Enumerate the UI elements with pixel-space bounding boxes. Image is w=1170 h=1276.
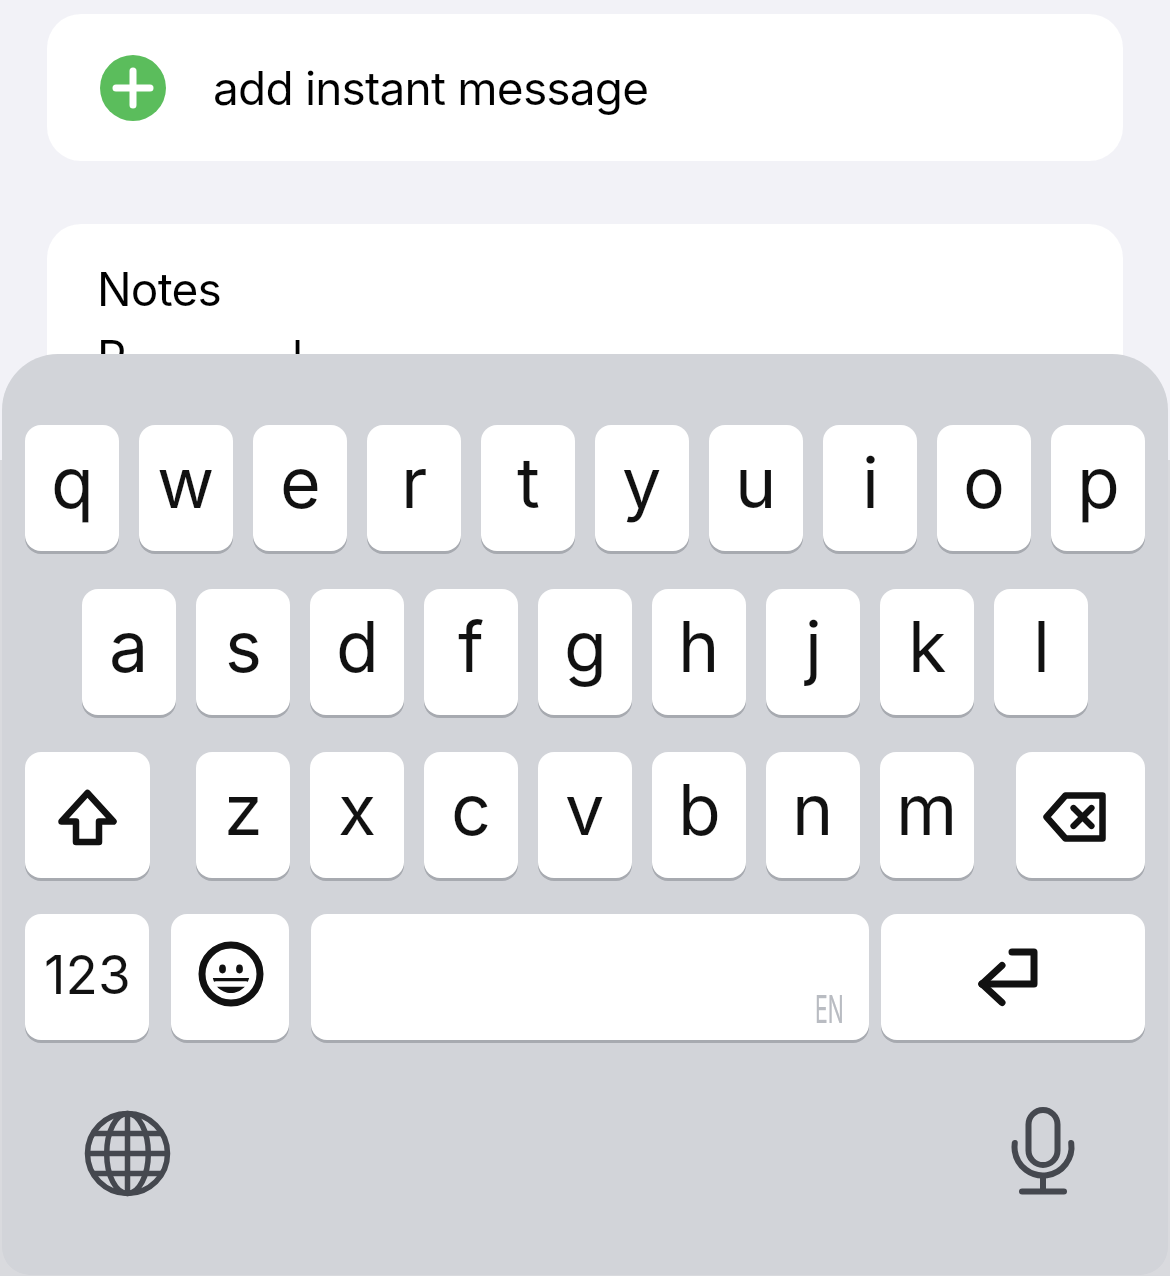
staticText: y xyxy=(622,440,662,525)
staticText: add instant message xyxy=(213,60,649,116)
staticText: n xyxy=(792,767,834,852)
button[interactable] xyxy=(1008,1105,1078,1197)
staticText: e xyxy=(280,440,321,525)
button[interactable]: c xyxy=(424,752,518,878)
staticText: k xyxy=(908,604,947,689)
staticText: v xyxy=(565,767,605,852)
staticText: 123 xyxy=(44,943,131,1007)
staticText: Notes xyxy=(97,261,221,317)
staticText: t xyxy=(517,440,540,525)
button[interactable]: t xyxy=(481,425,575,551)
button[interactable]: n xyxy=(766,752,860,878)
staticText: b xyxy=(678,767,721,852)
button[interactable]: b xyxy=(652,752,746,878)
button[interactable]: q xyxy=(25,425,119,551)
button[interactable]: v xyxy=(538,752,632,878)
staticText: s xyxy=(225,604,262,689)
button[interactable]: m xyxy=(880,752,974,878)
button[interactable]: a xyxy=(82,589,176,715)
button[interactable]: add instant message xyxy=(47,14,1123,161)
button[interactable]: x xyxy=(310,752,404,878)
staticText: o xyxy=(963,440,1005,525)
button[interactable]: k xyxy=(880,589,974,715)
button[interactable] xyxy=(171,914,289,1040)
staticText: u xyxy=(735,440,777,525)
button[interactable]: i xyxy=(823,425,917,551)
staticText: j xyxy=(805,604,822,689)
button[interactable]: z xyxy=(196,752,290,878)
button[interactable]: o xyxy=(937,425,1031,551)
staticText: P xyxy=(97,329,126,385)
button[interactable]: f xyxy=(424,589,518,715)
staticText: h xyxy=(678,604,720,689)
button[interactable]: y xyxy=(595,425,689,551)
staticText: f xyxy=(458,604,484,689)
button[interactable]: EN xyxy=(311,914,869,1040)
button[interactable]: s xyxy=(196,589,290,715)
button[interactable] xyxy=(881,914,1145,1040)
staticText: l xyxy=(1033,604,1050,689)
button[interactable]: p xyxy=(1051,425,1145,551)
button[interactable]: g xyxy=(538,589,632,715)
button[interactable]: j xyxy=(766,589,860,715)
button[interactable]: d xyxy=(310,589,404,715)
staticText: w xyxy=(157,440,215,525)
staticText: x xyxy=(338,767,377,852)
staticText: l xyxy=(292,329,303,385)
staticText: c xyxy=(451,767,491,852)
staticText: q xyxy=(51,440,94,525)
button[interactable] xyxy=(86,1112,169,1195)
staticText: p xyxy=(1077,440,1120,525)
staticText: EN xyxy=(815,986,844,1032)
button[interactable]: e xyxy=(253,425,347,551)
button[interactable]: l xyxy=(994,589,1088,715)
button[interactable]: u xyxy=(709,425,803,551)
button[interactable]: 123 xyxy=(25,914,149,1040)
button[interactable] xyxy=(25,752,150,878)
staticText: g xyxy=(564,604,607,689)
button[interactable]: w xyxy=(139,425,233,551)
staticText: a xyxy=(109,604,149,689)
button[interactable]: r xyxy=(367,425,461,551)
staticText: i xyxy=(862,440,879,525)
button[interactable]: Notes xyxy=(47,224,1123,544)
button[interactable] xyxy=(1016,752,1145,878)
button[interactable]: h xyxy=(652,589,746,715)
staticText: r xyxy=(401,440,428,525)
staticText: z xyxy=(224,767,263,852)
staticText: d xyxy=(336,604,379,689)
staticText: m xyxy=(896,767,958,852)
